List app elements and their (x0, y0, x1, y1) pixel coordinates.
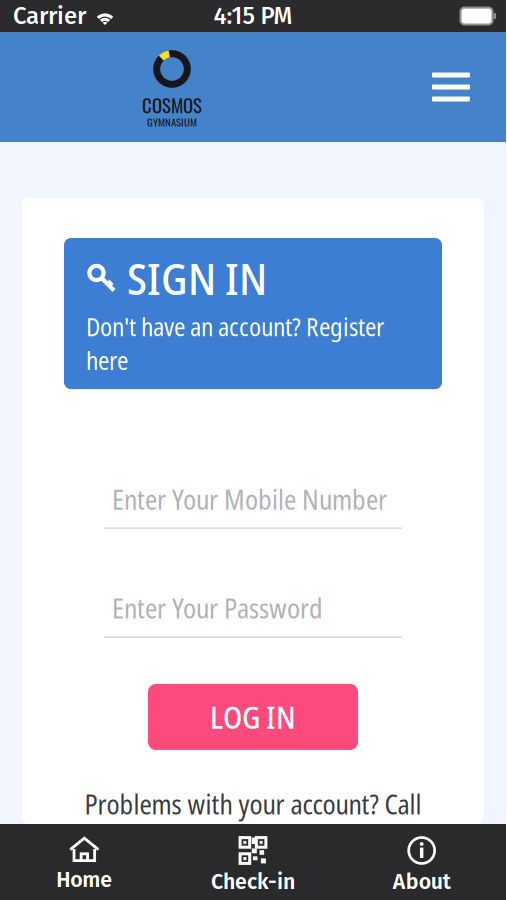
staticText: 4:15 PM (213, 2, 292, 30)
button[interactable]: LOG IN (148, 684, 358, 750)
staticText: SIGN IN (127, 248, 267, 308)
button[interactable]: Home (0, 824, 169, 900)
staticText: Carrier (13, 2, 86, 30)
staticText: COSMOS (142, 91, 202, 119)
button[interactable]: Menu (428, 67, 474, 107)
staticText: Check-in (211, 869, 295, 895)
button[interactable]: About (337, 824, 506, 900)
staticText: Home (56, 867, 112, 893)
staticText: LOG IN (210, 696, 296, 738)
staticText: Problems with your account? Call (84, 786, 421, 822)
staticText: GYMNASIUM (147, 114, 197, 129)
staticText: Enter Your Password (112, 590, 323, 626)
button[interactable]: Check-in (169, 824, 337, 900)
staticText: About (393, 869, 451, 895)
staticText: Enter Your Mobile Number (112, 481, 387, 517)
staticText: Don't have an account? Register here (86, 310, 384, 377)
